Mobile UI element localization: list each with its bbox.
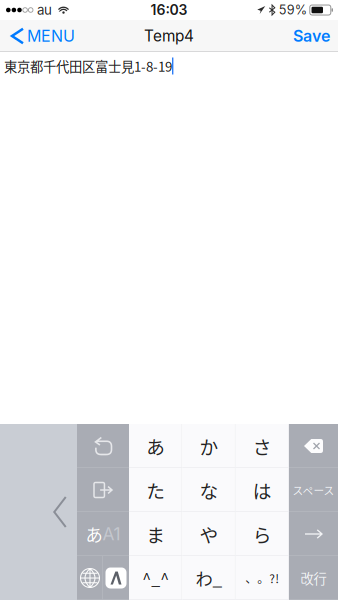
staticText: ^_^ [142,566,169,590]
button[interactable]: や [182,512,236,556]
button[interactable]: ^_^ [129,556,182,600]
button[interactable]: Undo [77,424,129,468]
staticText: 59% [279,2,307,18]
button[interactable]: わ_ [182,556,236,600]
button[interactable]: は [236,468,289,512]
staticText: スペース [292,482,334,498]
button[interactable]: ら [236,512,289,556]
staticText: au [37,2,52,18]
button[interactable]: Next candidate [289,512,338,556]
staticText: わ_ [195,565,222,591]
staticText: な [199,476,218,503]
staticText: あ [85,521,102,547]
button[interactable]: Space [289,468,338,512]
button[interactable]: ま [129,512,182,556]
staticText: A1 [102,523,120,544]
staticText: さ [253,432,272,459]
staticText: 16:03 [150,1,187,18]
button[interactable]: か [182,424,236,468]
button[interactable]: さ [236,424,289,468]
button[interactable]: Save [285,20,338,52]
staticText: た [146,476,165,503]
staticText: あ [146,432,165,459]
button[interactable]: た [129,468,182,512]
staticText: 東京都千代田区富士見1-8-19 [4,56,172,76]
button[interactable]: Return [289,556,338,600]
button[interactable]: な [182,468,236,512]
staticText: Save [293,26,330,46]
button[interactable]: ATOK [103,556,129,600]
staticText: ら [253,520,272,547]
staticText: や [199,520,218,547]
staticText: MENU [27,26,75,46]
staticText: は [253,476,272,503]
staticText: Temp4 [144,27,194,45]
button[interactable]: あ [129,424,182,468]
button[interactable]: Confirm [77,468,129,512]
button[interactable]: 、。?! [236,556,289,600]
button[interactable]: MENU [0,20,83,52]
button[interactable]: Input mode [77,512,129,556]
staticText: か [199,432,218,459]
staticText: 、。?! [245,569,279,587]
staticText: 改行 [300,568,326,588]
button[interactable]: Delete [289,424,338,468]
button[interactable]: Next keyboard [77,556,103,600]
button[interactable]: Expand keyboard [0,424,77,600]
staticText: ま [146,520,165,547]
